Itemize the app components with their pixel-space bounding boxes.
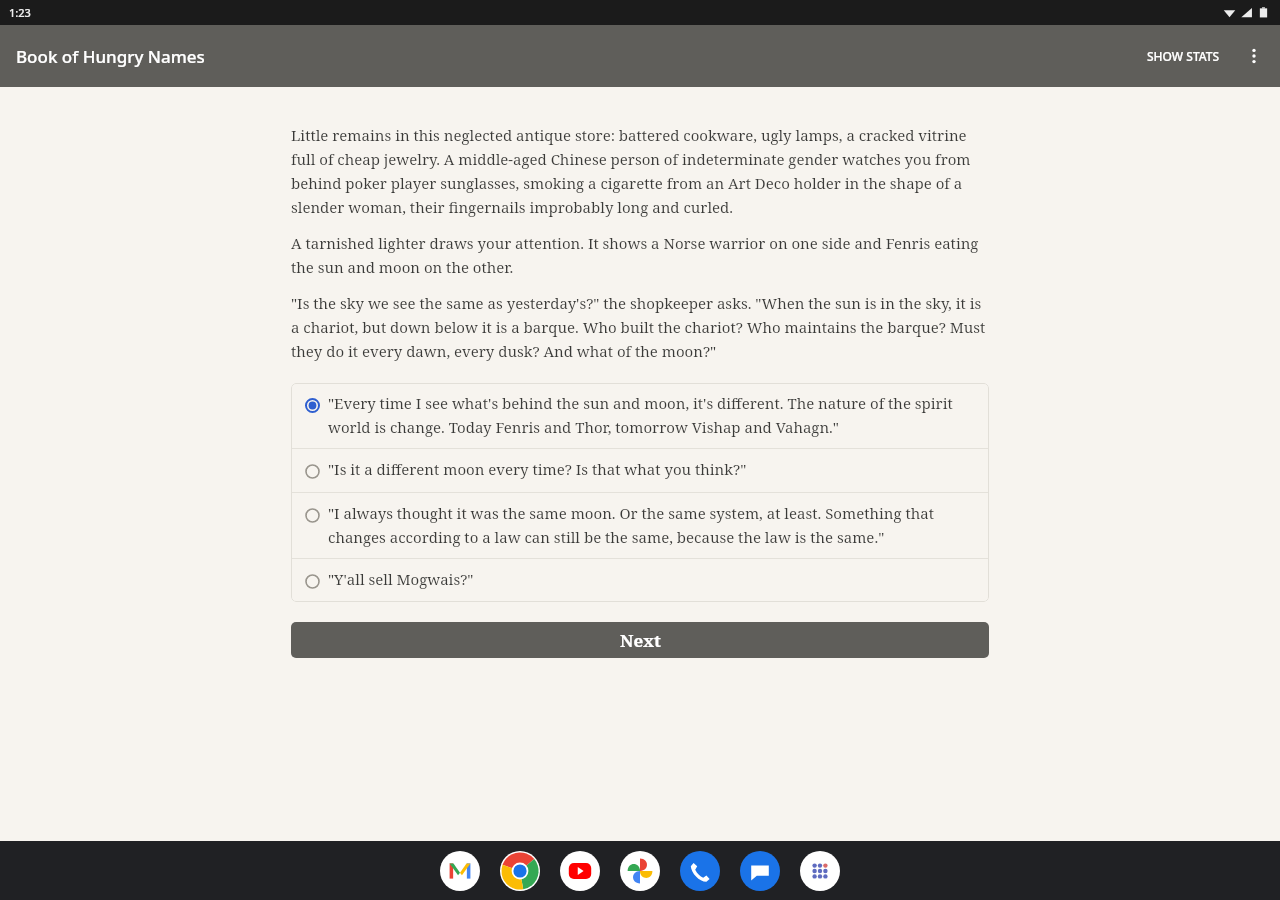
staticText: 1:23 (9, 5, 31, 20)
staticText: Little remains in this neglected antique… (291, 125, 989, 217)
staticText: "I always thought it was the same moon. … (328, 503, 975, 547)
button[interactable]: Chrome (500, 851, 540, 891)
staticText: Book of Hungry Names (16, 45, 205, 68)
staticText: "Every time I see what's behind the sun … (328, 393, 975, 437)
staticText: "Is the sky we see the same as yesterday… (291, 293, 989, 361)
staticText: SHOW STATS (1147, 48, 1220, 64)
button[interactable]: "Every time I see what's behind the sun … (291, 383, 989, 448)
button[interactable]: Messages (740, 851, 780, 891)
button[interactable]: Next (291, 622, 989, 658)
button[interactable]: "Is it a different moon every time? Is t… (291, 449, 989, 492)
staticText: "Y'all sell Mogwais?" (328, 569, 975, 589)
button[interactable]: Photos (620, 851, 660, 891)
staticText: A tarnished lighter draws your attention… (291, 233, 989, 277)
button[interactable]: "I always thought it was the same moon. … (291, 493, 989, 558)
button[interactable]: All apps (800, 851, 840, 891)
button[interactable]: SHOW STATS (1135, 38, 1232, 74)
button[interactable]: Gmail (440, 851, 480, 891)
button[interactable]: More options (1232, 34, 1276, 78)
button[interactable]: Phone (680, 851, 720, 891)
button[interactable]: "Y'all sell Mogwais?" (291, 559, 989, 602)
staticText: Next (620, 629, 661, 652)
button[interactable]: YouTube (560, 851, 600, 891)
staticText: "Is it a different moon every time? Is t… (328, 459, 975, 479)
